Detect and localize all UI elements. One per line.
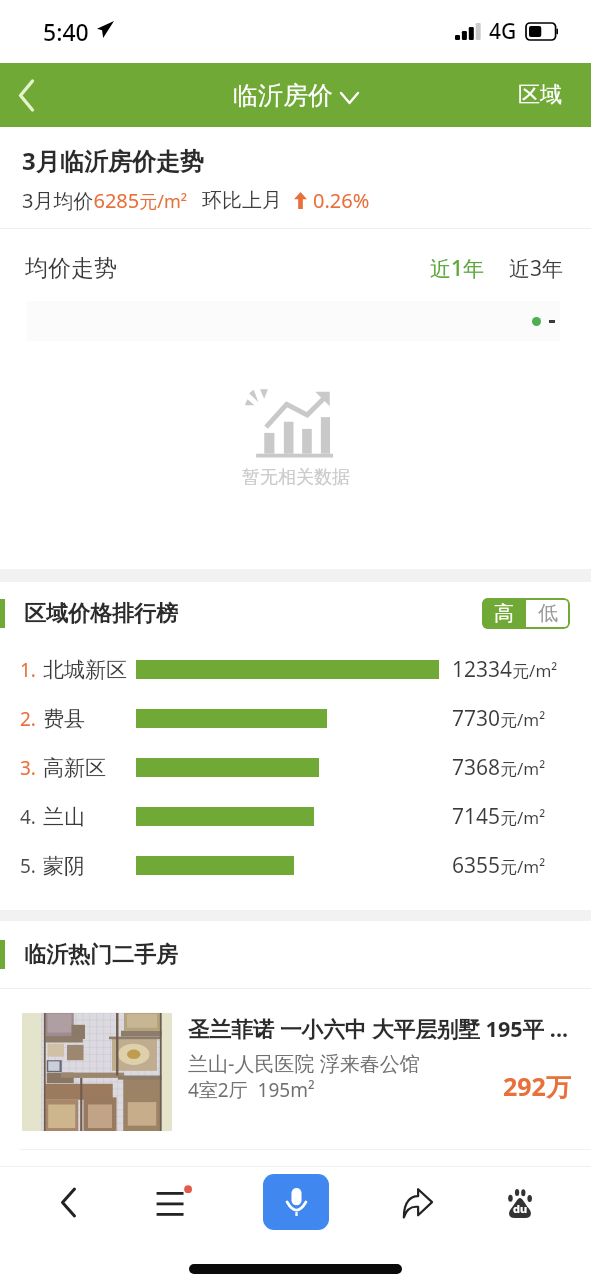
staticText: 兰山-人民医院 浮来春公馆 <box>188 1050 420 1077</box>
staticText: 3. <box>20 755 36 781</box>
staticText: 4室2厅 195m² <box>188 1077 315 1103</box>
staticText: 区域 <box>518 81 562 109</box>
staticText: 3月临沂房价走势 <box>22 144 204 177</box>
button[interactable]: 5. <box>0 841 591 890</box>
staticText: 292万 <box>503 1069 571 1103</box>
staticText: 4. <box>20 804 36 830</box>
staticText: 蒙阴 <box>43 853 85 879</box>
staticText: 1. <box>20 657 36 683</box>
staticText: 暂无相关数据 <box>242 466 350 489</box>
staticText: 5:40 <box>43 16 89 47</box>
staticText: 7145元/m² <box>452 802 546 831</box>
button[interactable]: Baidu home <box>489 1172 550 1233</box>
staticText: 0.26% <box>313 187 370 214</box>
button[interactable]: 近1年 <box>430 254 485 283</box>
staticText: 费县 <box>43 706 85 732</box>
button[interactable]: Menu <box>144 1172 205 1233</box>
button[interactable]: 3. <box>0 743 591 792</box>
staticText: 近1年 <box>430 254 485 283</box>
button[interactable]: Back <box>38 1172 99 1233</box>
button[interactable]: 4. <box>0 792 591 841</box>
staticText: 2. <box>20 706 36 732</box>
button[interactable]: 低 <box>526 598 570 629</box>
button[interactable]: 2. <box>0 694 591 743</box>
staticText: 7368元/m² <box>452 753 546 782</box>
staticText: 区域价格排行榜 <box>24 600 178 628</box>
button[interactable]: 1. <box>0 645 591 694</box>
button[interactable]: 高 <box>482 598 526 629</box>
staticText: 7730元/m² <box>452 704 546 733</box>
button[interactable]: Back <box>0 63 52 127</box>
staticText: 近3年 <box>509 254 564 283</box>
button[interactable]: 近3年 <box>509 254 564 283</box>
staticText: 3月均价6285元/m² <box>22 187 188 214</box>
staticText: 高新区 <box>43 755 106 781</box>
staticText: 北城新区 <box>43 657 127 683</box>
staticText: 环比上月 <box>202 188 282 213</box>
staticText: 临沂房价 <box>233 80 333 111</box>
staticText: 4G <box>489 17 517 46</box>
staticText: 低 <box>538 601 558 626</box>
staticText: du <box>513 1201 528 1216</box>
staticText: 12334元/m² <box>452 655 558 684</box>
staticText: 临沂热门二手房 <box>24 941 178 969</box>
staticText: 高 <box>494 601 514 626</box>
staticText: 兰山 <box>43 804 85 830</box>
staticText: 均价走势 <box>25 254 117 283</box>
staticText: 5. <box>20 853 36 879</box>
button[interactable]: 临沂房价 <box>233 80 358 111</box>
button[interactable]: Voice search <box>263 1174 329 1230</box>
button[interactable]: 区域 <box>502 63 591 127</box>
staticText: 6355元/m² <box>452 851 546 880</box>
button[interactable]: 圣兰菲诺 一小六中 大平层别墅 195平 ... <box>0 989 591 1149</box>
staticText: 圣兰菲诺 一小六中 大平层别墅 195平 ... <box>188 1014 569 1044</box>
button[interactable]: Share <box>387 1172 448 1233</box>
